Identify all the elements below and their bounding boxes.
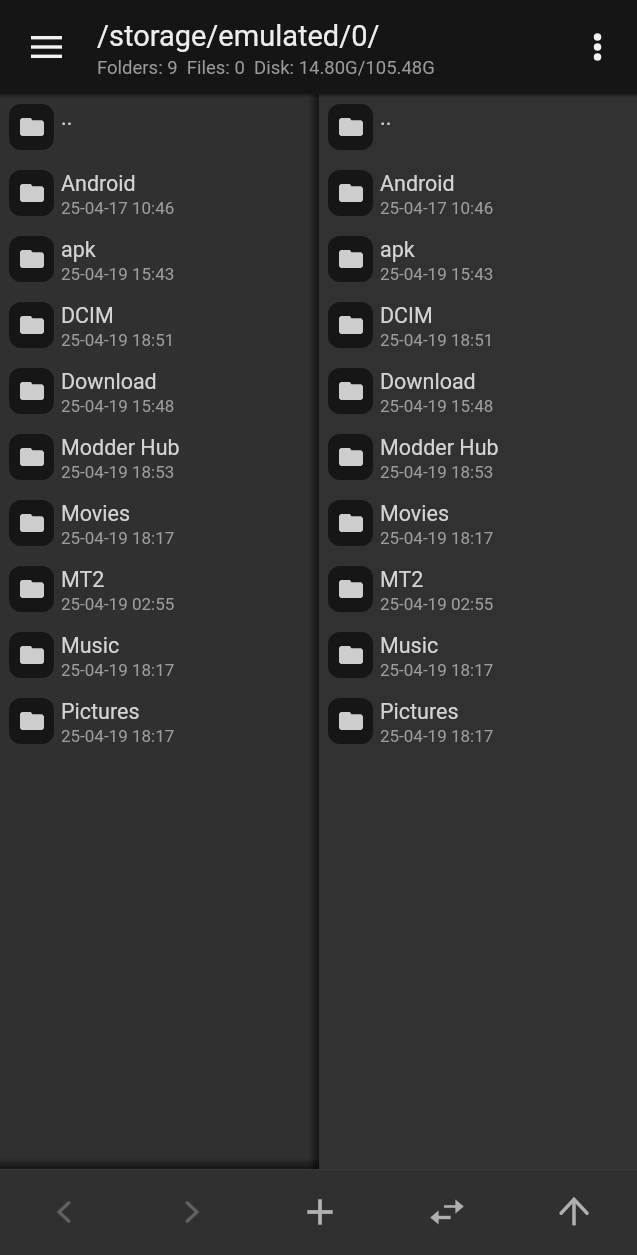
staticText: 25-04-17 10:46 — [61, 198, 175, 218]
staticText: DCIM — [61, 303, 114, 328]
button[interactable]: .. — [0, 94, 319, 160]
button[interactable]: DCIM — [0, 292, 319, 358]
staticText: 25-04-19 15:43 — [61, 264, 175, 284]
staticText: 25-04-19 18:51 — [380, 330, 494, 350]
staticText: 25-04-19 18:17 — [61, 660, 175, 680]
button[interactable]: Pictures — [319, 688, 637, 754]
staticText: apk — [61, 237, 96, 262]
button[interactable]: apk — [0, 226, 319, 292]
button[interactable]: Back — [0, 1169, 128, 1255]
staticText: 25-04-19 18:17 — [380, 660, 494, 680]
staticText: 25-04-19 18:53 — [61, 462, 175, 482]
staticText: Pictures — [380, 699, 459, 724]
button[interactable]: MT2 — [0, 556, 319, 622]
button[interactable]: apk — [319, 226, 637, 292]
staticText: apk — [380, 237, 415, 262]
button[interactable]: Up — [510, 1169, 637, 1255]
staticText: 25-04-19 18:17 — [61, 528, 175, 548]
staticText: Modder Hub — [380, 435, 499, 460]
button[interactable]: New folder — [256, 1169, 383, 1255]
staticText: Movies — [61, 501, 131, 526]
staticText: MT2 — [61, 567, 105, 592]
staticText: .. — [380, 105, 392, 130]
button[interactable]: Modder Hub — [319, 424, 637, 490]
staticText: .. — [61, 105, 73, 130]
staticText: 25-04-19 02:55 — [61, 594, 175, 614]
button[interactable]: Forward — [128, 1169, 256, 1255]
staticText: Modder Hub — [61, 435, 180, 460]
staticText: MT2 — [380, 567, 424, 592]
staticText: 25-04-19 18:53 — [380, 462, 494, 482]
button[interactable]: .. — [319, 94, 637, 160]
button[interactable]: Modder Hub — [0, 424, 319, 490]
button[interactable]: Download — [319, 358, 637, 424]
button[interactable]: Movies — [0, 490, 319, 556]
staticText: Pictures — [61, 699, 140, 724]
staticText: 25-04-17 10:46 — [380, 198, 494, 218]
staticText: 25-04-19 18:17 — [380, 528, 494, 548]
button[interactable]: Movies — [319, 490, 637, 556]
staticText: 25-04-19 15:48 — [380, 396, 494, 416]
button[interactable]: MT2 — [319, 556, 637, 622]
staticText: 25-04-19 15:43 — [380, 264, 494, 284]
staticText: 25-04-19 18:17 — [380, 726, 494, 746]
button[interactable]: Swap panes — [383, 1169, 510, 1255]
staticText: Download — [380, 369, 476, 394]
button[interactable]: Android — [319, 160, 637, 226]
staticText: /storage/emulated/0/ — [97, 19, 380, 53]
staticText: 25-04-19 02:55 — [380, 594, 494, 614]
staticText: Music — [380, 633, 439, 658]
button[interactable]: Music — [0, 622, 319, 688]
button[interactable]: Menu — [20, 21, 72, 73]
staticText: Download — [61, 369, 157, 394]
button[interactable]: Music — [319, 622, 637, 688]
button[interactable]: Pictures — [0, 688, 319, 754]
staticText: 25-04-19 18:17 — [61, 726, 175, 746]
staticText: 25-04-19 15:48 — [61, 396, 175, 416]
button[interactable]: Android — [0, 160, 319, 226]
staticText: DCIM — [380, 303, 433, 328]
button[interactable]: More options — [572, 22, 622, 72]
staticText: Android — [380, 171, 455, 196]
staticText: 25-04-19 18:51 — [61, 330, 175, 350]
staticText: Music — [61, 633, 120, 658]
staticText: Movies — [380, 501, 450, 526]
button[interactable]: DCIM — [319, 292, 637, 358]
staticText: Android — [61, 171, 136, 196]
button[interactable]: Download — [0, 358, 319, 424]
staticText: Folders: 9 Files: 0 Disk: 14.80G/105.48G — [97, 57, 435, 79]
